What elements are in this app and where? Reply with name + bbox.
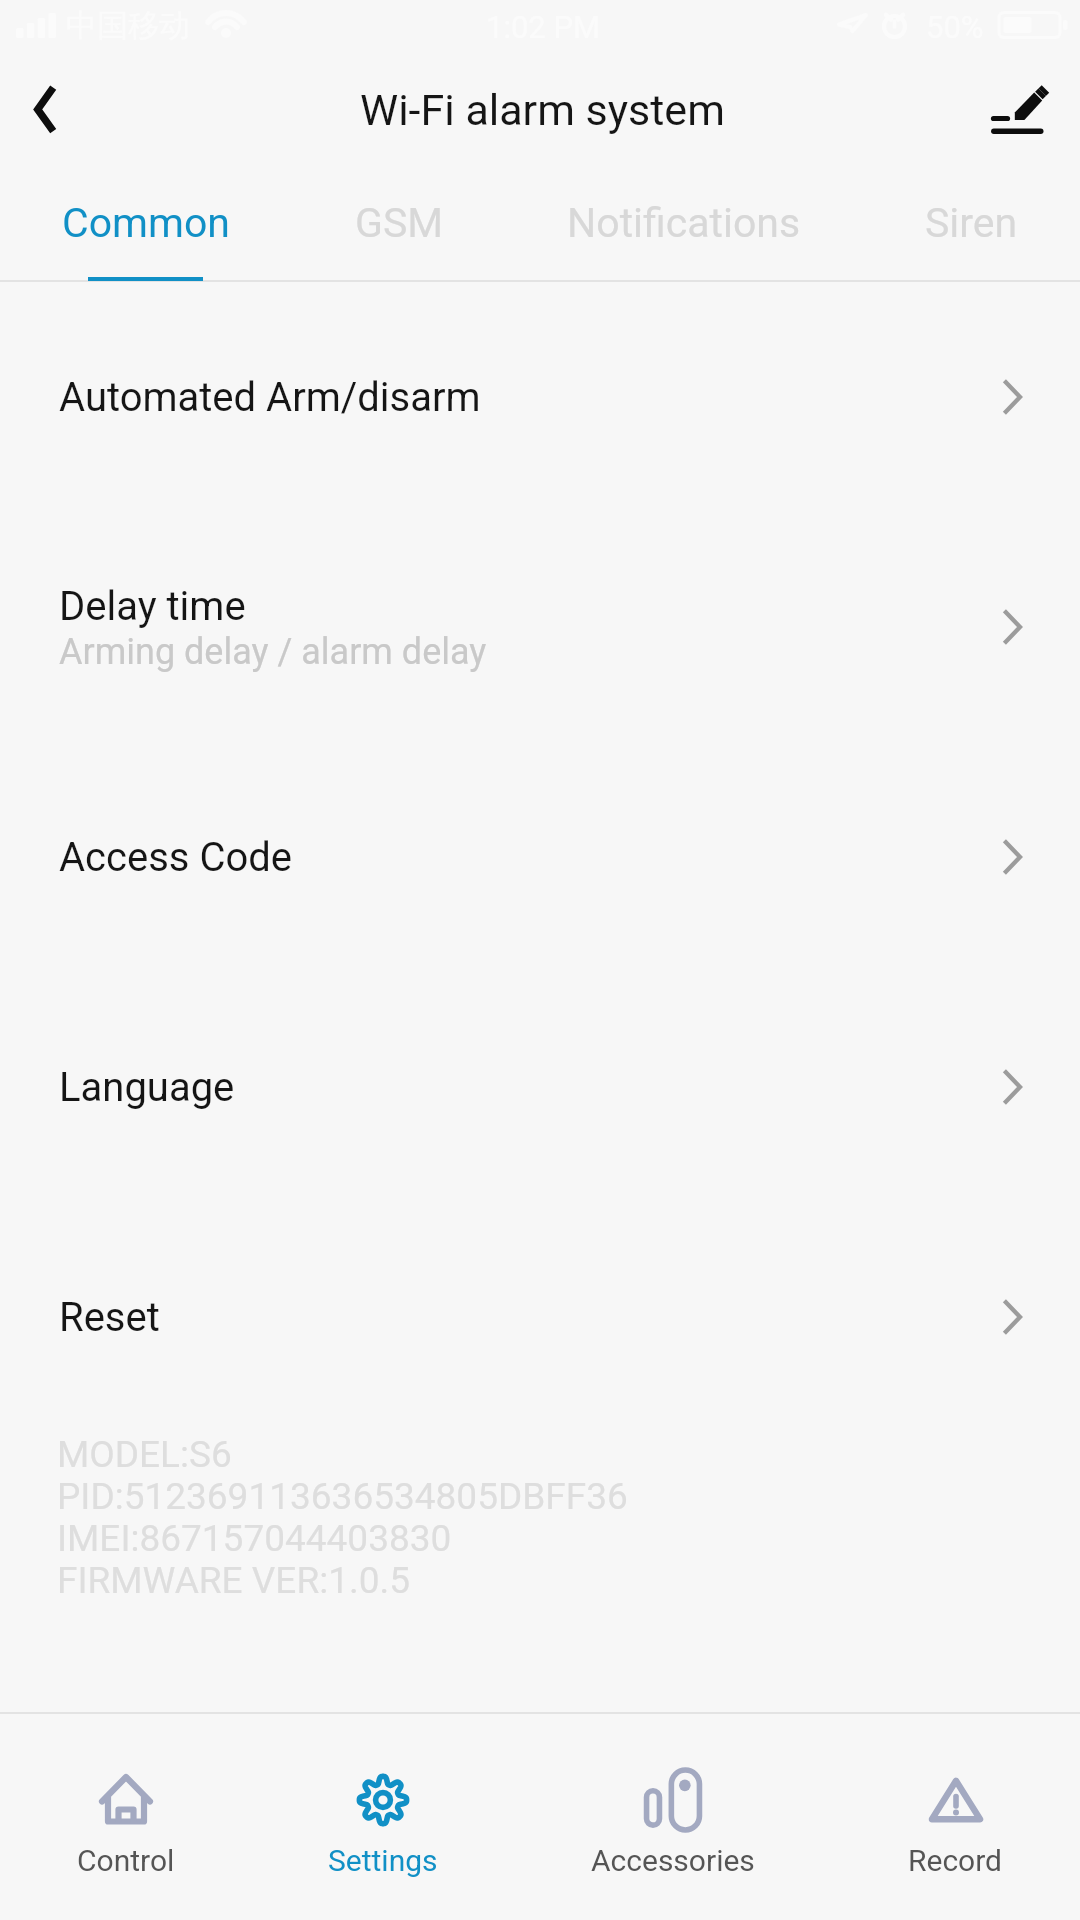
staticText: GSM [355,199,444,247]
button[interactable]: Language [0,972,1080,1202]
staticText: Siren [925,199,1018,247]
button[interactable]: Back [0,56,92,180]
button[interactable]: Record [908,1714,1003,1878]
staticText: Settings [328,1843,438,1878]
staticText: Arming delay / alarm delay [59,630,487,672]
button[interactable]: GSM [355,180,444,266]
button[interactable]: Notifications [567,180,801,266]
button[interactable]: Siren [925,180,1018,266]
button[interactable]: Access Code [0,742,1080,972]
button[interactable]: Control [77,1714,175,1878]
button[interactable]: Rename [968,56,1080,180]
staticText: Automated Arm/disarm [59,374,481,421]
staticText: Access Code [59,834,293,881]
staticText: Language [59,1064,235,1111]
staticText: Record [908,1843,1003,1878]
button[interactable]: Accessories [591,1714,755,1878]
staticText: Reset [59,1294,160,1341]
button[interactable]: Reset [0,1202,1080,1432]
button[interactable]: Common [62,180,231,266]
staticText: PID:512369113636534805DBFF36 [57,1476,628,1518]
staticText: MODEL:S6 [57,1434,232,1476]
staticText: Notifications [567,199,801,247]
staticText: Common [62,199,231,247]
staticText: Wi-Fi alarm system [360,85,725,136]
button[interactable]: Settings [328,1714,438,1878]
staticText: FIRMWARE VER:1.0.5 [57,1560,411,1602]
button[interactable]: Automated Arm/disarm [0,282,1080,512]
staticText: Delay time [59,583,246,630]
staticText: Control [77,1843,175,1878]
button[interactable]: Delay time [0,512,1080,742]
staticText: Accessories [591,1843,755,1878]
staticText: IMEI:867157044403830 [57,1518,452,1560]
